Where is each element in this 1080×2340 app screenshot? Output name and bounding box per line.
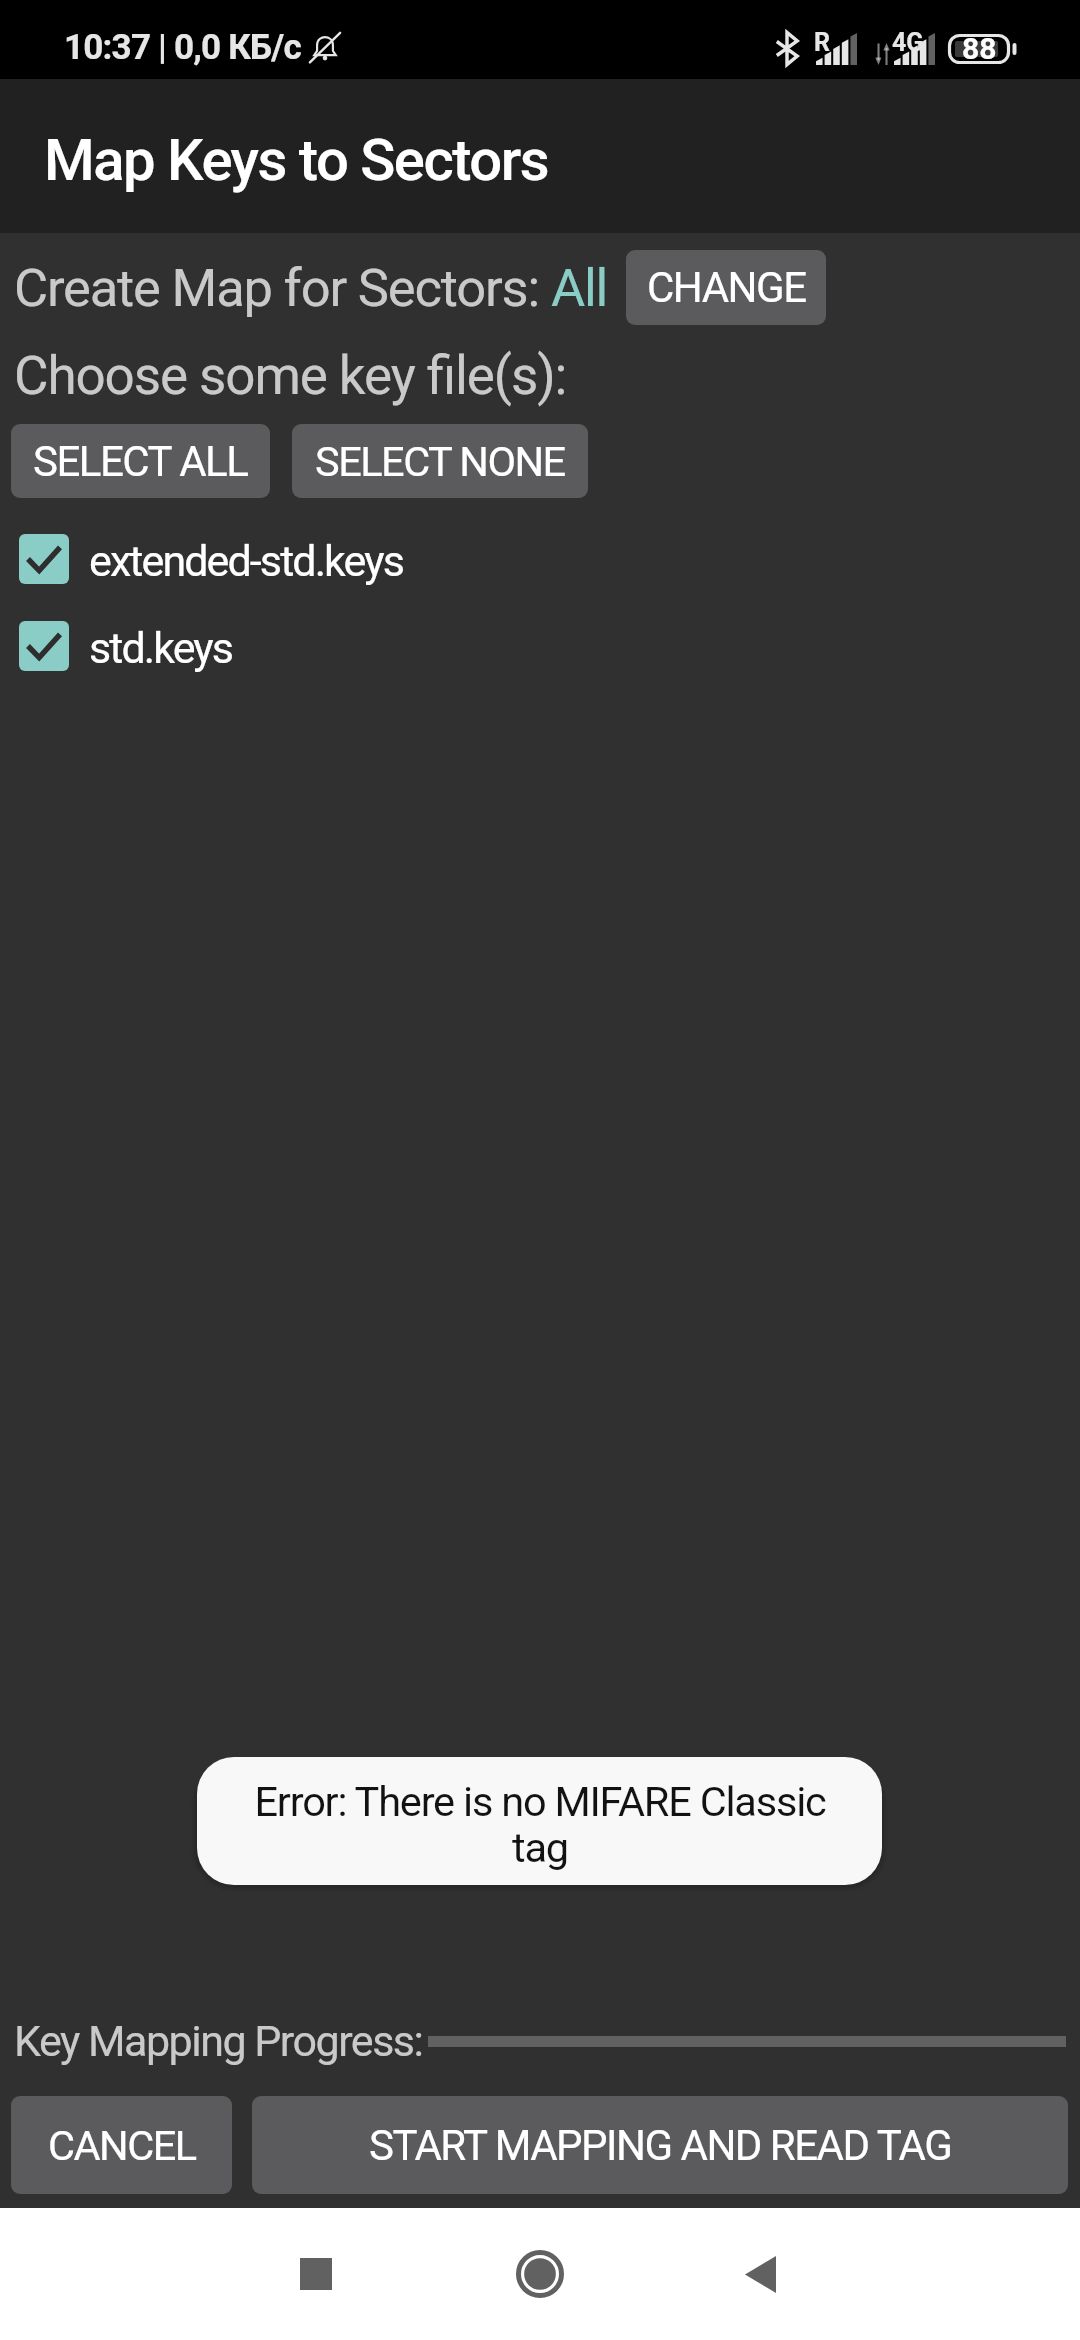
staticText: 88	[962, 31, 997, 61]
button[interactable]: START MAPPING AND READ TAG	[252, 2096, 1068, 2194]
staticText: Error: There is no MIFARE Classic tag	[240, 1777, 840, 1872]
button[interactable]: Recent apps	[256, 2214, 376, 2334]
staticText: std.keys	[89, 623, 233, 673]
button[interactable]: CANCEL	[11, 2096, 232, 2194]
staticText: Map Keys to Sectors	[44, 126, 549, 194]
staticText: SELECT ALL	[33, 437, 248, 486]
staticText: CANCEL	[48, 2121, 196, 2170]
button[interactable]: extended-std.keys	[0, 533, 1080, 584]
staticText: extended-std.keys	[89, 536, 403, 586]
button[interactable]: SELECT NONE	[292, 424, 588, 498]
staticText: R	[814, 28, 831, 57]
staticText: Choose some key file(s):	[14, 345, 567, 407]
button[interactable]: Home	[480, 2214, 600, 2334]
staticText: START MAPPING AND READ TAG	[369, 2121, 952, 2170]
staticText: SELECT NONE	[315, 437, 565, 486]
staticText: 10:37 | 0,0 КБ/с	[64, 27, 301, 68]
staticText: CHANGE	[647, 263, 806, 312]
button[interactable]: Back	[700, 2214, 820, 2334]
staticText: 4G	[892, 28, 924, 57]
button[interactable]: std.keys	[0, 620, 1080, 671]
staticText: Key Mapping Progress:	[14, 2016, 423, 2066]
staticText: Create Map for Sectors:	[14, 257, 551, 319]
button[interactable]: CHANGE	[626, 250, 826, 325]
button[interactable]: SELECT ALL	[11, 424, 270, 498]
staticText: All	[551, 257, 608, 319]
